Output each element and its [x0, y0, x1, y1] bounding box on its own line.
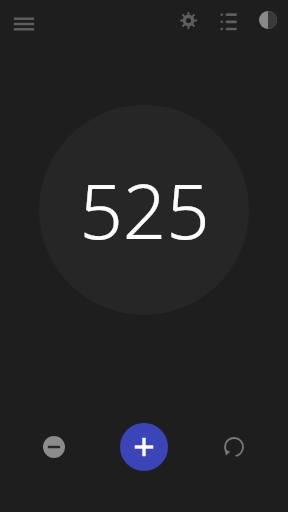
button[interactable]: 525 [39, 105, 249, 315]
button[interactable]: Menu [4, 4, 44, 44]
button[interactable]: Toggle theme [248, 0, 288, 40]
button[interactable]: List [208, 0, 248, 40]
button[interactable]: Reset [214, 427, 254, 467]
button[interactable]: Settings [168, 0, 208, 40]
staticText: 525 [79, 158, 210, 262]
button[interactable]: Decrement [34, 427, 74, 467]
button[interactable]: Add [120, 423, 168, 471]
